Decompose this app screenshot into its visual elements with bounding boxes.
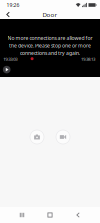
staticText: the device. Please stop one or more: [9, 42, 91, 49]
button[interactable]: Record: [56, 130, 70, 144]
button[interactable]: Back: [68, 207, 88, 223]
staticText: 19:38:13: [81, 56, 95, 62]
button[interactable]: Snapshot: [30, 130, 44, 144]
staticText: 19:26: [6, 1, 19, 8]
staticText: 19:33:03: [3, 56, 17, 62]
button[interactable]: Play: [3, 66, 10, 73]
button[interactable]: Home: [40, 207, 60, 223]
button[interactable]: Recent apps: [12, 207, 32, 223]
staticText: Door: [42, 10, 57, 19]
staticText: connections and try again.: [20, 50, 80, 56]
button[interactable]: Back: [0, 10, 16, 19]
staticText: No more connections are allowed for: [7, 35, 92, 41]
